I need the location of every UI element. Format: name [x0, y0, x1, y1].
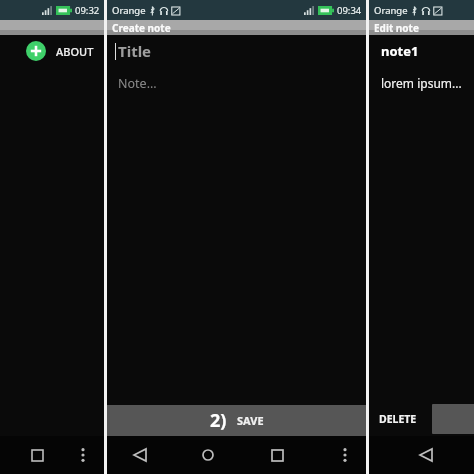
button[interactable]: Back: [411, 440, 441, 470]
button[interactable]: Recents: [24, 442, 50, 468]
button[interactable]: More options: [330, 440, 360, 470]
button[interactable]: Back: [125, 440, 155, 470]
staticText: lorem ipsum...: [381, 75, 462, 91]
button[interactable]: 2): [107, 405, 366, 436]
button[interactable]: note1: [381, 42, 474, 60]
button[interactable]: More options: [70, 442, 96, 468]
staticText: Title: [118, 41, 152, 61]
staticText: Edit note: [374, 21, 419, 35]
staticText: Create note: [112, 21, 171, 35]
button[interactable]: Title: [115, 41, 366, 61]
button[interactable]: lorem ipsum...: [381, 75, 474, 91]
button[interactable]: Home: [193, 440, 223, 470]
button[interactable]: DELETE: [379, 412, 417, 426]
staticText: 2): [210, 408, 227, 433]
staticText: Orange: [112, 4, 146, 17]
staticText: 09:34: [337, 4, 362, 17]
button[interactable]: Recents: [262, 440, 292, 470]
staticText: note1: [381, 42, 419, 60]
staticText: 09:32: [75, 4, 100, 17]
button[interactable]: ABOUT: [26, 41, 94, 61]
staticText: Note...: [118, 75, 157, 92]
staticText: ABOUT: [56, 44, 94, 59]
staticText: Orange: [374, 4, 408, 17]
staticText: DELETE: [379, 412, 417, 426]
staticText: SAVE: [237, 413, 264, 428]
button[interactable]: Note...: [118, 75, 366, 92]
